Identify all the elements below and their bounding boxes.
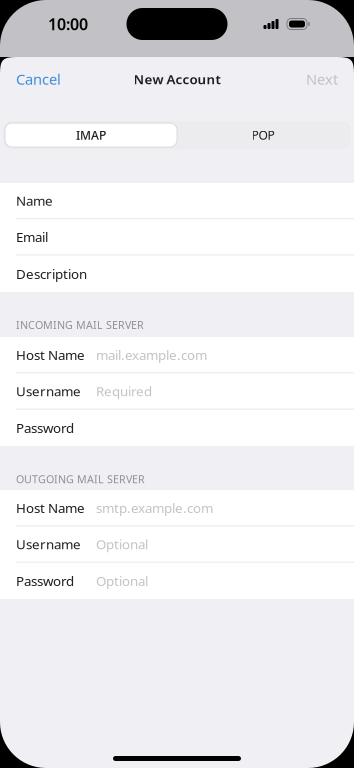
staticText: OUTGOING MAIL SERVER: [16, 472, 145, 486]
button[interactable]: Cancel: [0, 57, 73, 101]
staticText: Host Name: [16, 346, 85, 364]
staticText: Host Name: [16, 499, 85, 517]
staticText: mail.example.com: [96, 346, 207, 364]
staticText: Name: [16, 192, 53, 209]
staticText: Next: [306, 69, 338, 89]
button[interactable]: Description: [0, 256, 354, 292]
button[interactable]: Email: [0, 219, 354, 256]
button[interactable]: Host Name: [0, 337, 354, 373]
staticText: Username: [16, 382, 81, 400]
button[interactable]: POP: [177, 123, 349, 147]
staticText: Cancel: [16, 69, 61, 89]
staticText: smtp.example.com: [96, 499, 213, 517]
button[interactable]: Username: [0, 373, 354, 410]
staticText: IMAP: [76, 127, 106, 143]
button[interactable]: Host Name: [0, 490, 354, 526]
staticText: Password: [16, 572, 74, 590]
button[interactable]: Name: [0, 183, 354, 219]
staticText: Optional: [96, 572, 148, 590]
button[interactable]: Next: [294, 57, 354, 101]
staticText: Email: [16, 228, 48, 246]
button[interactable]: Username: [0, 526, 354, 563]
staticText: POP: [251, 127, 274, 143]
button[interactable]: Password: [0, 410, 354, 446]
staticText: 10:00: [48, 13, 88, 35]
button[interactable]: IMAP: [5, 123, 177, 147]
button[interactable]: Password: [0, 563, 354, 599]
staticText: Description: [16, 265, 87, 283]
staticText: Password: [16, 419, 74, 437]
staticText: New Account: [133, 70, 220, 88]
staticText: Required: [96, 382, 152, 400]
staticText: Username: [16, 535, 81, 553]
staticText: INCOMING MAIL SERVER: [16, 318, 144, 332]
staticText: Optional: [96, 535, 148, 553]
